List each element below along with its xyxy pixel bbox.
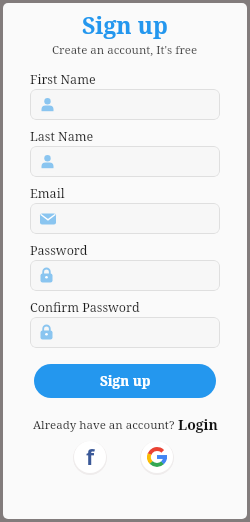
button[interactable]: f (74, 441, 106, 473)
button[interactable] (141, 441, 173, 473)
staticText: First Name (30, 71, 96, 86)
staticText: Confirm Password (30, 299, 140, 314)
staticText: Password (30, 242, 88, 257)
staticText: Create an account, It's free (52, 42, 198, 58)
staticText: Sign up (100, 372, 151, 390)
staticText: Login (178, 415, 218, 434)
button[interactable]: Already have an account? (30, 415, 220, 434)
staticText: Email (30, 185, 65, 200)
button[interactable] (30, 260, 220, 291)
staticText: Already have an account? (33, 417, 178, 433)
button[interactable] (30, 203, 220, 234)
button[interactable]: Sign up (34, 364, 216, 398)
staticText: Sign up (82, 9, 168, 40)
button[interactable] (30, 317, 220, 348)
staticText: Last Name (30, 128, 94, 143)
staticText: f (86, 443, 95, 472)
button[interactable] (30, 89, 220, 120)
button[interactable] (30, 146, 220, 177)
